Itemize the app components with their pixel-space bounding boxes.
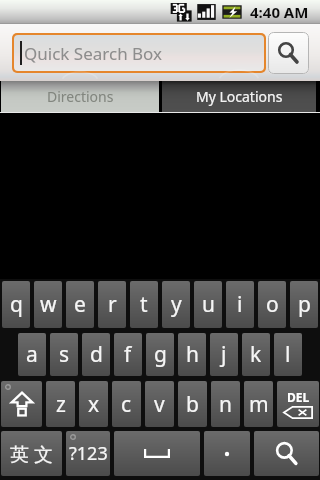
staticText: DEL (287, 389, 310, 405)
button[interactable]: u (194, 281, 222, 328)
button[interactable]: f (114, 333, 142, 376)
button[interactable]: z (46, 381, 75, 427)
staticText: 4:40 AM (250, 2, 309, 22)
staticText: q (10, 290, 23, 319)
button[interactable]: t (130, 281, 158, 328)
staticText: h (186, 340, 199, 369)
staticText: t (140, 290, 148, 319)
staticText: a (26, 340, 38, 369)
button[interactable]: n (211, 381, 240, 427)
staticText: u (202, 290, 215, 319)
staticText: g (154, 340, 167, 369)
button[interactable]: o (258, 281, 286, 328)
staticText: s (59, 340, 70, 369)
staticText: o (266, 290, 279, 319)
staticText: n (219, 390, 232, 419)
button[interactable]: q (2, 281, 30, 328)
button[interactable]: b (178, 381, 207, 427)
staticText: d (90, 340, 103, 369)
button[interactable]: e (66, 281, 94, 328)
staticText: Directions (47, 87, 114, 106)
button[interactable]: p (290, 281, 318, 328)
staticText: My Locations (196, 87, 283, 106)
staticText: l (285, 340, 291, 369)
button[interactable] (254, 431, 319, 476)
button[interactable]: k (242, 333, 270, 376)
button[interactable]: y (162, 281, 190, 328)
staticText: 英 文 (10, 441, 53, 467)
button[interactable]: ?123 (66, 431, 110, 476)
button[interactable]: Directions (1, 81, 159, 112)
staticText: f (124, 340, 132, 369)
button[interactable]: x (79, 381, 108, 427)
staticText: e (74, 290, 86, 319)
button[interactable]: v (145, 381, 174, 427)
button[interactable]: i (226, 281, 254, 328)
button[interactable]: d (82, 333, 110, 376)
button[interactable]: Search (268, 32, 309, 74)
button[interactable] (1, 381, 42, 427)
button[interactable] (114, 431, 200, 476)
staticText: x (88, 390, 100, 419)
button[interactable]: m (244, 381, 273, 427)
button[interactable]: h (178, 333, 206, 376)
button[interactable]: a (18, 333, 46, 376)
button[interactable] (204, 431, 250, 476)
button[interactable]: Quick Search Box (14, 35, 264, 71)
staticText: z (56, 390, 66, 419)
staticText: w (40, 290, 57, 319)
staticText: i (237, 290, 243, 319)
staticText: Quick Search Box (24, 42, 163, 65)
button[interactable]: w (34, 281, 62, 328)
button[interactable]: g (146, 333, 174, 376)
button[interactable]: l (274, 333, 302, 376)
button[interactable]: c (112, 381, 141, 427)
staticText: m (249, 390, 269, 419)
button[interactable]: j (210, 333, 238, 376)
button[interactable]: r (98, 281, 126, 328)
button[interactable]: DEL (277, 381, 319, 427)
button[interactable]: 英 文 (1, 431, 62, 476)
staticText: c (121, 390, 132, 419)
staticText: p (298, 290, 311, 319)
staticText: v (154, 390, 165, 419)
staticText: r (108, 290, 117, 319)
staticText: b (186, 390, 199, 419)
button[interactable]: My Locations (162, 81, 316, 112)
staticText: y (171, 290, 182, 319)
staticText: j (221, 340, 227, 369)
staticText: ?123 (69, 441, 108, 466)
staticText: k (250, 340, 262, 369)
button[interactable]: s (50, 333, 78, 376)
